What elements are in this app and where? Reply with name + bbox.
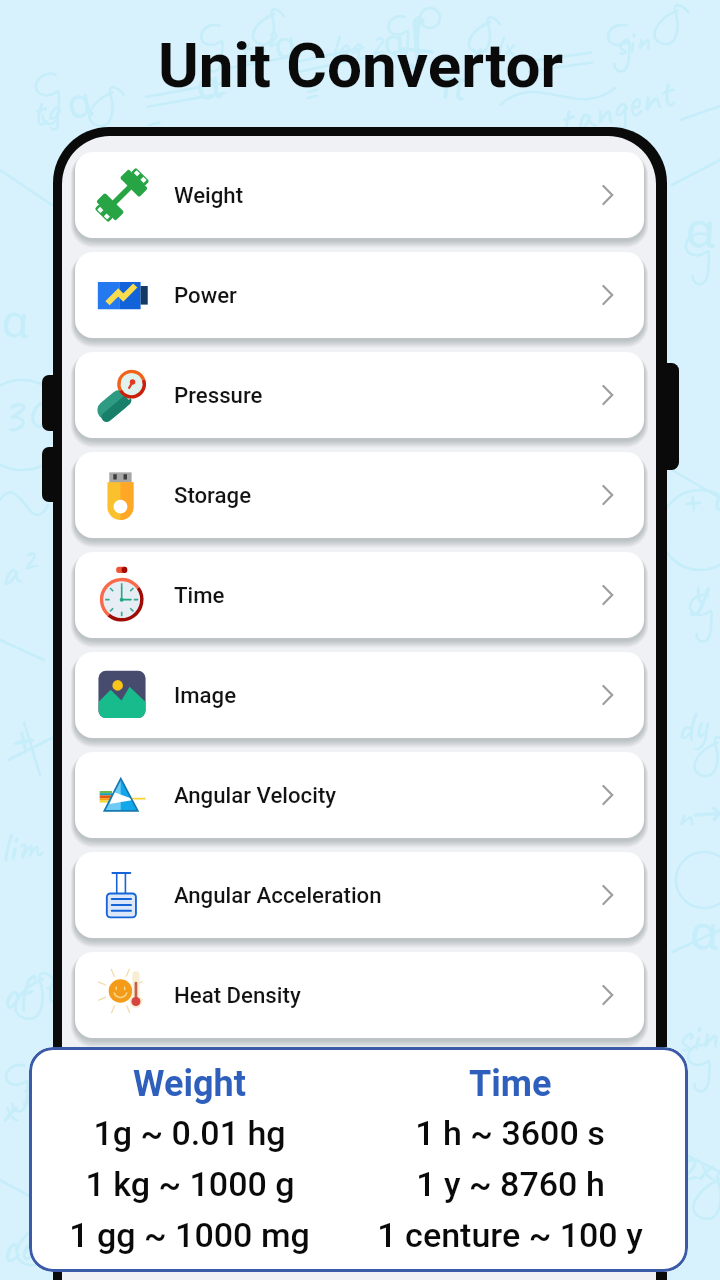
button[interactable]: Image	[75, 652, 644, 738]
button[interactable]: Angular Velocity	[75, 752, 644, 838]
staticText: =	[295, 65, 323, 117]
other: Open Image	[594, 682, 620, 708]
other: Open Heat Density	[594, 982, 620, 1008]
other: Open Weight	[594, 182, 620, 208]
staticText: Time	[174, 582, 225, 608]
staticText: 1 centure ~ 100 y	[377, 1215, 643, 1255]
other: Open Pressure	[594, 382, 620, 408]
staticText: Angular Velocity	[174, 782, 337, 808]
staticText: x²	[0, 1079, 33, 1136]
staticText: +	[0, 698, 37, 773]
staticText: α	[0, 289, 32, 351]
button[interactable]: Angular Acceleration	[75, 852, 644, 938]
staticText: 2x	[674, 1139, 713, 1196]
staticText: Power	[174, 282, 237, 308]
other: Open Storage	[594, 482, 620, 508]
staticText: sin	[673, 1008, 720, 1065]
staticText: tg²α	[235, 18, 300, 75]
button[interactable]: Pressure	[75, 352, 644, 438]
staticText: Angular Acceleration	[174, 882, 382, 908]
staticText: Weight	[174, 182, 244, 208]
button[interactable]: Weight	[75, 152, 644, 238]
staticText: Pressure	[174, 382, 263, 408]
staticText: n→∞	[674, 787, 720, 838]
staticText: 1 kg ~ 1000 g	[85, 1164, 295, 1204]
other: Open Angular Velocity	[594, 782, 620, 808]
staticText: α	[193, 55, 224, 111]
other: Open Power	[594, 282, 620, 308]
staticText: sin	[611, 16, 653, 65]
staticText: 1 gg ~ 1000 mg	[69, 1215, 310, 1255]
staticText: tg α	[25, 72, 98, 139]
staticText: y	[688, 559, 709, 620]
staticText: of the	[0, 954, 96, 1024]
button[interactable]: Heat Density	[75, 952, 644, 1038]
staticText: Unit Convertor	[158, 29, 564, 102]
staticText: α	[685, 195, 717, 261]
staticText: tangent	[551, 65, 679, 150]
button[interactable]: Power	[75, 252, 644, 338]
staticText: Weight	[133, 1063, 246, 1105]
staticText: log 2α	[328, 17, 407, 69]
staticText: x dx	[466, 24, 515, 71]
staticText: Image	[174, 682, 237, 708]
staticText: 1 y ~ 8760 h	[416, 1164, 605, 1204]
staticText: Storage	[174, 482, 252, 508]
staticText: cos	[0, 1212, 54, 1277]
button[interactable]: Time	[75, 552, 644, 638]
staticText: dy	[674, 699, 709, 754]
staticText: 1 h ~ 3600 s	[415, 1113, 605, 1153]
staticText: ⊥	[393, 4, 443, 66]
other: Open Time	[594, 582, 620, 608]
staticText: + c	[678, 468, 720, 527]
staticText: lim	[0, 818, 44, 875]
staticText: a²	[0, 543, 35, 600]
staticText: 1g ~ 0.01 hg	[93, 1113, 286, 1153]
other: Open Angular Acceleration	[594, 882, 620, 908]
staticText: ∫	[398, 6, 435, 73]
staticText: Heat Density	[174, 982, 301, 1008]
staticText: π	[437, 55, 470, 111]
staticText: 30°	[0, 377, 65, 449]
staticText: Time	[469, 1063, 552, 1105]
staticText: α	[689, 899, 720, 963]
staticText: =	[135, 95, 165, 152]
button[interactable]: Storage	[75, 452, 644, 538]
